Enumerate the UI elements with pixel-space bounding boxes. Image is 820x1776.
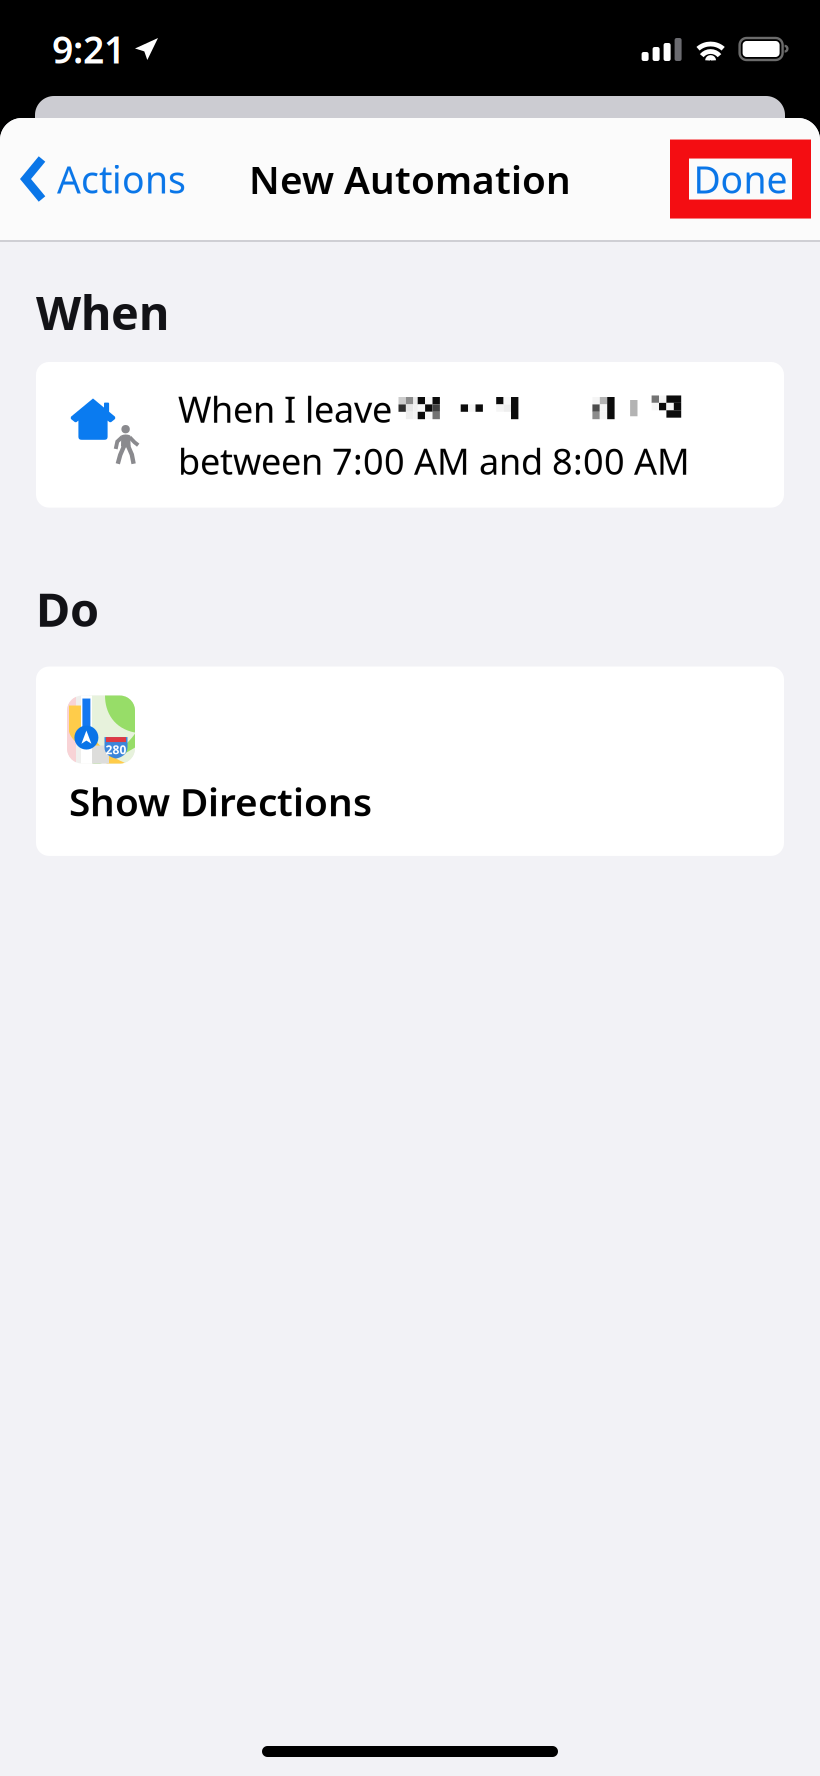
staticText: 9:21 [52,24,125,74]
staticText: Show Directions [69,776,372,827]
staticText: Actions [57,154,186,204]
staticText: 280 [105,742,126,757]
staticText: New Automation [249,153,571,205]
button[interactable]: Done [670,139,811,218]
staticText: When I leave [178,385,392,433]
staticText: Done [693,154,787,204]
staticText: Do [36,578,99,640]
button[interactable]: Actions [0,139,202,219]
staticText: between 7:00 AM and 8:00 AM [178,437,690,485]
staticText: When [36,281,169,343]
